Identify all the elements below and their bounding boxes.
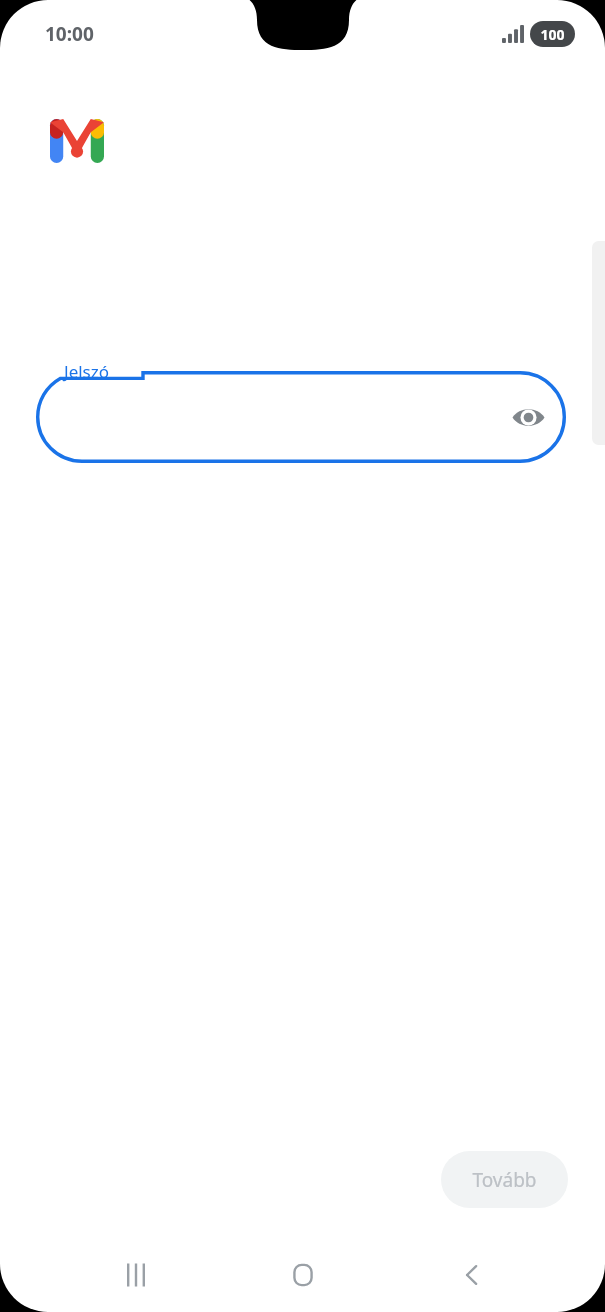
- button[interactable]: Jelszó megjelenítése: [36, 371, 566, 463]
- button[interactable]: Jelszó megjelenítése: [508, 397, 548, 437]
- button[interactable]: Tovább: [441, 1151, 568, 1208]
- button[interactable]: Kezdőképernyő: [273, 1245, 333, 1305]
- staticText: 10:00: [45, 21, 94, 47]
- button[interactable]: Vissza: [442, 1245, 502, 1305]
- button[interactable]: Legutóbbiak: [106, 1245, 166, 1305]
- staticText: Jelszó: [64, 360, 110, 383]
- staticText: 100: [540, 25, 565, 44]
- staticText: Tovább: [472, 1167, 537, 1193]
